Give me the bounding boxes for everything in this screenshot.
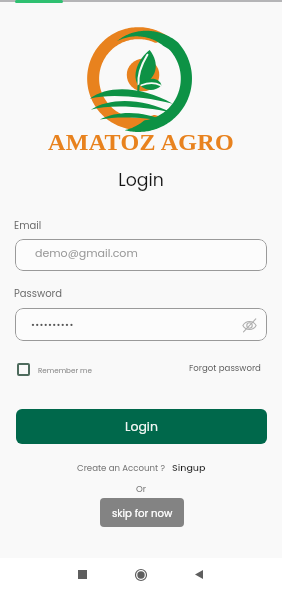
button[interactable]: Remember me — [17, 363, 92, 376]
button[interactable]: Singup — [172, 461, 206, 474]
button[interactable]: demo@gmail.com — [15, 239, 267, 271]
staticText: Login — [125, 418, 158, 435]
staticText: Or — [0, 483, 282, 495]
button[interactable]: Forgot password — [189, 362, 261, 374]
button[interactable]: Recent apps — [67, 559, 98, 590]
button[interactable]: Show password — [240, 316, 258, 334]
staticText: Create an Account ? — [77, 462, 165, 474]
staticText: Login — [0, 168, 282, 192]
staticText: Password — [14, 286, 63, 300]
staticText: •••••••••• — [31, 318, 74, 331]
staticText: Remember me — [38, 365, 92, 375]
button[interactable]: skip for now — [100, 498, 184, 527]
staticText: demo@gmail.com — [35, 245, 138, 260]
staticText: Email — [14, 218, 42, 232]
staticText: AMATOZ AGRO — [0, 129, 282, 156]
button[interactable]: Login — [16, 409, 267, 444]
button[interactable]: Back — [183, 559, 214, 590]
staticText: skip for now — [112, 506, 173, 520]
button[interactable]: •••••••••• — [15, 308, 267, 341]
button[interactable]: Home — [125, 559, 156, 590]
